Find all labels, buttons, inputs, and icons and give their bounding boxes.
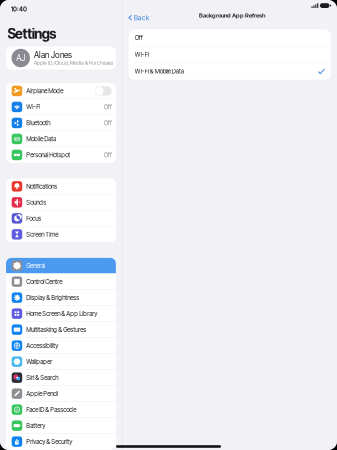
button[interactable]: Sounds <box>6 195 116 210</box>
staticText: Off <box>135 34 143 41</box>
button[interactable]: Face ID & Passcode <box>6 402 116 417</box>
staticText: Focus <box>26 215 41 222</box>
staticText: Apple ID, iCloud, Media & Purchases <box>34 60 113 66</box>
staticText: Face ID & Passcode <box>26 406 76 413</box>
staticText: General <box>26 262 45 269</box>
button[interactable]: Mobile Data <box>6 131 116 147</box>
staticText: Notifications <box>26 183 57 190</box>
button[interactable]: Notifications <box>6 179 116 194</box>
staticText: Mobile Data <box>26 135 56 143</box>
staticText: Control Centre <box>26 278 62 285</box>
staticText: Off <box>104 119 112 127</box>
staticText: Back <box>134 13 150 22</box>
button[interactable]: Accessibility <box>6 338 116 353</box>
staticText: Display & Brightness <box>26 294 79 301</box>
button[interactable]: Home Screen & App Library <box>6 306 116 321</box>
button[interactable]: Siri & Search <box>6 370 116 385</box>
staticText: Wi-Fi <box>26 103 40 111</box>
button[interactable]: Wi-Fi <box>129 46 330 63</box>
staticText: Apple Pencil <box>26 390 58 397</box>
staticText: Bluetooth <box>26 119 50 127</box>
button[interactable]: Control Centre <box>6 274 116 289</box>
button[interactable]: Focus <box>6 211 116 226</box>
staticText: 10:40 <box>11 5 27 13</box>
button[interactable]: Back <box>124 10 155 25</box>
button[interactable]: Wi-Fi <box>6 99 116 115</box>
button[interactable]: Screen Time <box>6 227 116 242</box>
button[interactable]: Personal Hotspot <box>6 147 116 163</box>
button[interactable]: Battery <box>6 418 116 433</box>
staticText: Personal Hotspot <box>26 151 70 159</box>
button[interactable]: AJ <box>6 46 116 69</box>
staticText: Wallpaper <box>26 358 52 365</box>
staticText: Home Screen & App Library <box>26 310 97 317</box>
staticText: Battery <box>26 422 45 429</box>
staticText: Off <box>104 151 112 159</box>
button[interactable]: Off <box>129 30 330 46</box>
button[interactable]: Multitasking & Gestures <box>6 322 116 337</box>
staticText: Off <box>104 103 112 111</box>
button[interactable]: Privacy & Security <box>6 434 116 449</box>
button[interactable]: General <box>6 258 116 273</box>
button[interactable]: Bluetooth <box>6 115 116 131</box>
button[interactable]: Wallpaper <box>6 354 116 369</box>
staticText: Siri & Search <box>26 374 58 381</box>
staticText: Multitasking & Gestures <box>26 326 86 333</box>
staticText: Privacy & Security <box>26 438 72 445</box>
staticText: Wi-Fi <box>135 51 149 58</box>
staticText: Sounds <box>26 199 46 206</box>
staticText: Alan Jones <box>34 50 72 60</box>
staticText: Background App Refresh <box>199 12 265 19</box>
staticText: Settings <box>7 25 56 42</box>
button[interactable]: Wi-Fi & Mobile Data <box>129 63 330 79</box>
button[interactable]: Display & Brightness <box>6 290 116 305</box>
staticText: Airplane Mode <box>26 87 63 95</box>
staticText: Screen Time <box>26 231 58 238</box>
button[interactable]: Apple Pencil <box>6 386 116 401</box>
button[interactable]: Airplane Mode <box>6 83 116 99</box>
staticText: Accessibility <box>26 342 58 349</box>
staticText: AJ <box>16 53 25 63</box>
staticText: Wi-Fi & Mobile Data <box>135 68 184 75</box>
